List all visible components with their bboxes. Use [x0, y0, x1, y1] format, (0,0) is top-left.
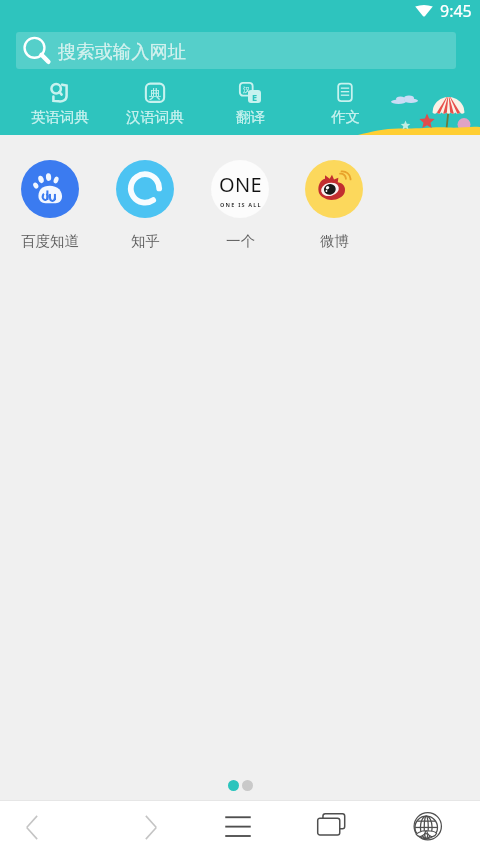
staticText: 知乎	[131, 232, 160, 250]
staticText: 翻译	[236, 108, 265, 126]
staticText: 作文	[331, 108, 360, 126]
staticText: 一个	[226, 232, 255, 250]
staticText: 汉语词典	[126, 108, 184, 126]
button[interactable]: 百度知道	[2, 160, 98, 250]
button[interactable]: Menu	[190, 801, 286, 853]
staticText: 9:45	[440, 0, 472, 21]
staticText: ONE	[219, 171, 262, 198]
button[interactable]: 典	[107, 82, 203, 126]
staticText: 微博	[320, 232, 349, 250]
button[interactable]: 英语词典	[12, 82, 108, 126]
button[interactable]: Forward	[102, 801, 198, 853]
button[interactable]: Back	[0, 801, 80, 853]
button[interactable]: 微博	[286, 160, 382, 250]
button[interactable]: ONE	[192, 160, 288, 250]
staticText: 汉	[243, 85, 250, 94]
staticText: 百度知道	[21, 232, 79, 250]
button[interactable]: 知乎	[97, 160, 193, 250]
staticText: 典	[149, 86, 161, 101]
button[interactable]: Home	[379, 801, 475, 853]
staticText: E	[252, 91, 258, 103]
button[interactable]: 搜索或输入网址	[16, 32, 456, 69]
button[interactable]: Tabs	[282, 801, 378, 853]
button[interactable]: 作文	[297, 82, 393, 126]
staticText: 英语词典	[31, 108, 89, 126]
staticText: 搜索或输入网址	[58, 40, 187, 63]
staticText: ONE IS ALL	[220, 201, 262, 208]
button[interactable]: 汉	[202, 82, 298, 126]
